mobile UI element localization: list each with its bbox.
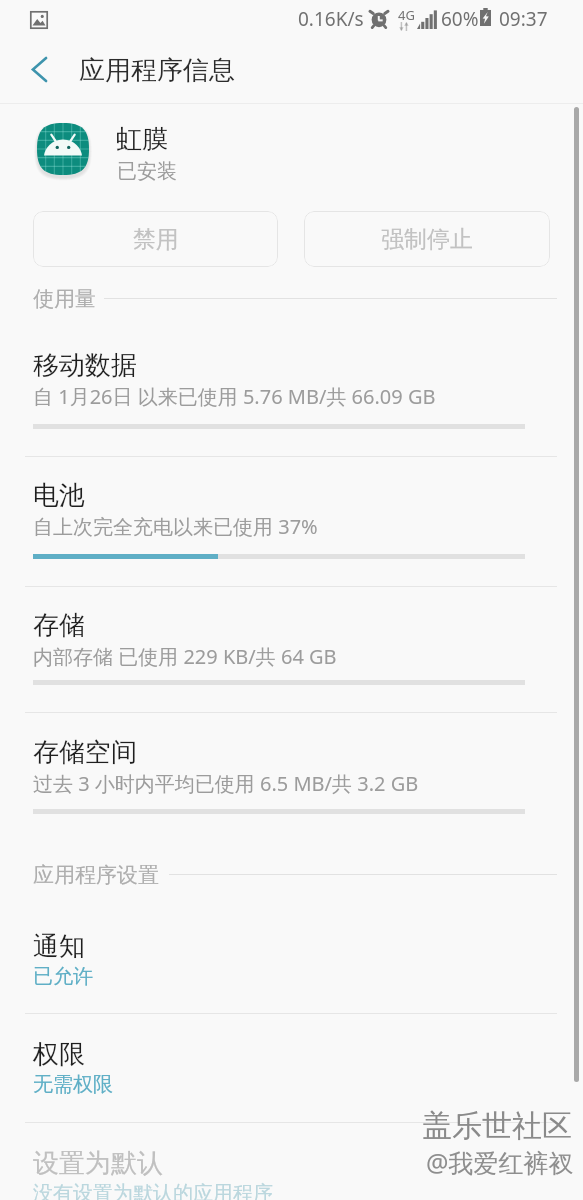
button[interactable]: 禁用 [33, 211, 278, 267]
staticText: 通知 [33, 930, 85, 963]
staticText: 存储空间 [33, 736, 137, 769]
staticText: 使用量 [33, 286, 96, 312]
staticText: 虹膜 [116, 123, 168, 156]
button[interactable]: 虹膜 [0, 104, 583, 192]
staticText: 存储 [33, 609, 85, 642]
staticText: 应用程序设置 [33, 862, 159, 888]
button[interactable]: 通知 [0, 912, 583, 1013]
staticText: 无需权限 [33, 1072, 113, 1097]
staticText: 禁用 [133, 225, 179, 254]
staticText: 强制停止 [381, 225, 473, 254]
button[interactable]: 电池 [0, 461, 583, 586]
staticText: 60% [441, 6, 479, 32]
button[interactable]: 存储空间 [0, 718, 583, 843]
staticText: 已允许 [33, 964, 93, 989]
staticText: 0.16K/s [298, 6, 364, 32]
button[interactable]: 强制停止 [304, 211, 550, 267]
staticText: 没有设置为默认的应用程序 [33, 1181, 273, 1200]
button[interactable]: Back [9, 38, 69, 100]
button[interactable]: 移动数据 [0, 331, 583, 456]
staticText: 4G [398, 6, 415, 24]
staticText: 盖乐世社区 [422, 1107, 572, 1145]
staticText: 权限 [33, 1038, 85, 1071]
staticText: 电池 [33, 479, 85, 512]
staticText: 应用程序信息 [79, 54, 235, 87]
staticText: 已安装 [117, 159, 177, 184]
staticText: 09:37 [499, 6, 548, 32]
staticText: @我爱红裤衩 [426, 1145, 574, 1179]
button[interactable]: 存储 [0, 591, 583, 712]
staticText: 设置为默认 [33, 1147, 163, 1180]
button[interactable]: 权限 [0, 1020, 583, 1122]
staticText: 过去 3 小时内平均已使用 6.5 MB/共 3.2 GB [33, 770, 419, 797]
staticText: 内部存储 已使用 229 KB/共 64 GB [33, 643, 337, 670]
staticText: 自上次完全充电以来已使用 37% [33, 513, 318, 540]
staticText: 自 1月26日 以来已使用 5.76 MB/共 66.09 GB [33, 383, 436, 410]
staticText: 移动数据 [33, 349, 137, 382]
button[interactable]: 设置为默认 [0, 1129, 583, 1200]
